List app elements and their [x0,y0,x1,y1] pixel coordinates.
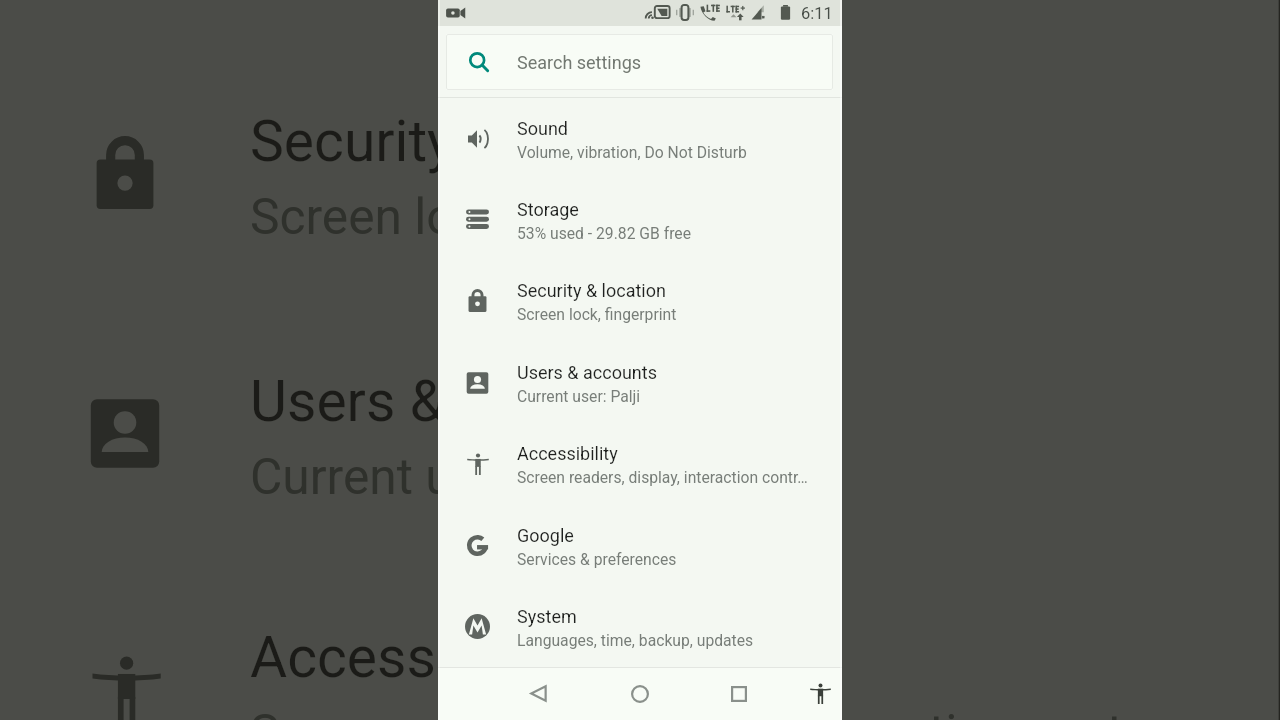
button[interactable]: Accessibility [438,423,842,504]
staticText: 6:11 [801,4,833,23]
staticText: Security & location [517,280,666,301]
button[interactable]: Accessibility [795,667,845,720]
staticText: Volume, vibration, Do Not Disturb [517,143,747,161]
staticText: Google [517,525,574,546]
staticText: Languages, time, backup, updates [517,631,754,649]
button[interactable]: Search settings [446,34,833,90]
button[interactable]: Storage [438,179,842,260]
staticText: Sound [517,118,568,139]
staticText: Accessibility [517,443,618,464]
staticText: Current user: Palji [250,446,642,503]
button[interactable]: Google [438,504,842,586]
staticText: Screen lock, fingerprint [517,305,677,323]
button[interactable]: Sound [438,98,842,179]
staticText: Users & accounts [250,367,693,434]
button[interactable]: System [438,586,842,667]
staticText: Users & accounts [517,362,657,383]
staticText: System [517,606,577,627]
staticText: Screen lock, fingerprint [250,187,756,244]
staticText: Screen readers, display, interaction con… [250,703,1171,720]
staticText: Storage [517,199,579,220]
button[interactable]: Users & accounts [438,341,842,423]
staticText: Services & preferences [517,550,677,568]
button[interactable]: Recent apps [714,667,764,720]
staticText: Screen readers, display, interaction con… [517,468,808,486]
button[interactable]: Security & location [438,260,842,341]
staticText: 53% used - 29.82 GB free [517,224,691,242]
staticText: Security & location [250,108,722,174]
button[interactable]: Home [615,667,665,720]
staticText: Current user: Palji [517,387,641,405]
staticText: Accessibility [250,623,570,690]
button[interactable]: Back [513,667,563,720]
staticText: Search settings [517,52,642,73]
